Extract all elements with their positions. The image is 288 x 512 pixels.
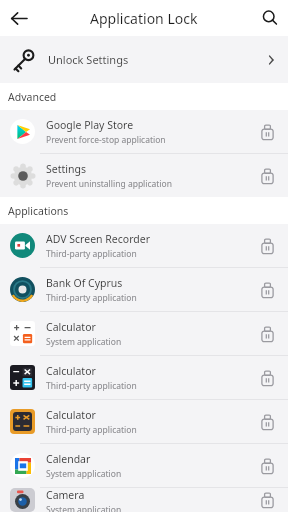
staticText: Calculator	[46, 408, 96, 422]
staticText: System application	[46, 468, 122, 480]
button[interactable]: Back	[0, 0, 36, 36]
button[interactable]: Lock Calculator	[250, 405, 284, 439]
staticText: Application Lock	[90, 9, 198, 28]
button[interactable]: Lock Calendar	[250, 449, 284, 483]
button[interactable]: Bank Of Cyprus	[0, 268, 288, 311]
staticText: System application	[46, 336, 122, 348]
button[interactable]: Lock ADV Screen Recorder	[250, 229, 284, 263]
staticText: Bank Of Cyprus	[46, 276, 123, 290]
button[interactable]: Settings	[0, 154, 288, 197]
button[interactable]: Calculator	[0, 400, 288, 443]
button[interactable]: Lock Settings	[250, 159, 284, 193]
staticText: Calculator	[46, 364, 96, 378]
staticText: Prevent force-stop application	[46, 134, 166, 146]
button[interactable]: Lock Bank Of Cyprus	[250, 273, 284, 307]
button[interactable]: Calculator	[0, 356, 288, 399]
button[interactable]: Search	[252, 0, 288, 36]
staticText: Unlock Settings	[48, 52, 129, 67]
staticText: Applications	[8, 204, 69, 218]
staticText: Third-party application	[46, 248, 137, 260]
staticText: Google Play Store	[46, 118, 134, 132]
button[interactable]: Lock Calculator	[250, 361, 284, 395]
staticText: Advanced	[8, 90, 57, 104]
button[interactable]: ADV Screen Recorder	[0, 224, 288, 267]
button[interactable]: Calculator	[0, 312, 288, 355]
staticText: System application	[46, 504, 122, 512]
button[interactable]: Lock Google Play Store	[250, 115, 284, 149]
button[interactable]: Calendar	[0, 444, 288, 487]
staticText: Settings	[46, 162, 86, 176]
button[interactable]: Google Play Store	[0, 110, 288, 153]
button[interactable]: Lock Camera	[250, 488, 284, 512]
staticText: Third-party application	[46, 292, 137, 304]
staticText: Prevent uninstalling application	[46, 178, 172, 190]
button[interactable]: Camera	[0, 488, 288, 512]
button[interactable]: Lock Calculator	[250, 317, 284, 351]
staticText: ADV Screen Recorder	[46, 232, 150, 246]
staticText: Calculator	[46, 320, 96, 334]
staticText: Third-party application	[46, 424, 137, 436]
staticText: Calendar	[46, 452, 91, 466]
staticText: Third-party application	[46, 380, 137, 392]
staticText: Camera	[46, 488, 85, 502]
button[interactable]: Unlock Settings	[0, 36, 288, 83]
